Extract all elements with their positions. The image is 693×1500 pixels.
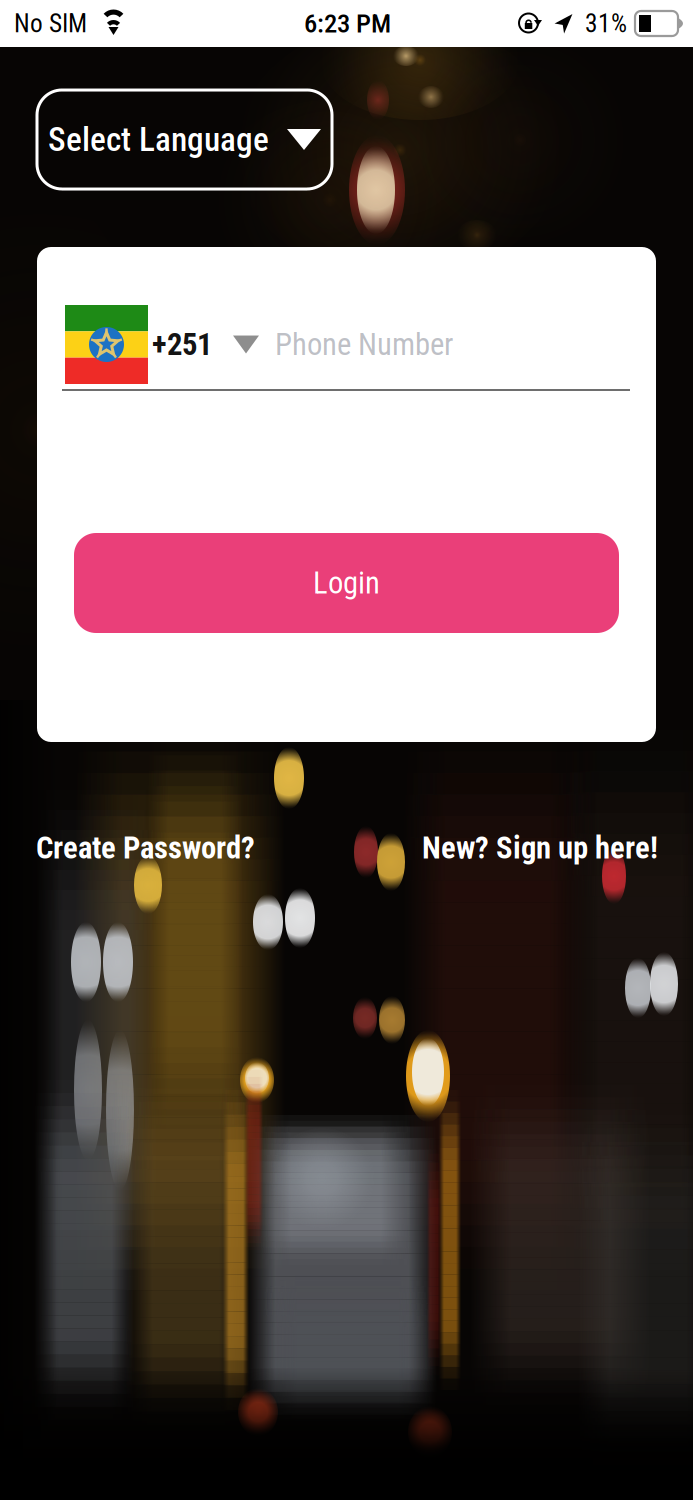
button[interactable]: Create Password?: [36, 830, 255, 866]
staticText: Login: [313, 565, 380, 601]
button[interactable]: Select Language: [37, 90, 332, 189]
staticText: 6:23 PM: [304, 8, 391, 39]
staticText: Phone Number: [275, 326, 453, 362]
button[interactable]: New? Sign up here!: [422, 830, 658, 866]
staticText: Select Language: [48, 120, 269, 159]
staticText: +251: [152, 326, 212, 362]
staticText: New? Sign up here!: [422, 830, 658, 866]
staticText: Create Password?: [36, 830, 255, 866]
staticText: No SIM: [14, 9, 87, 38]
staticText: 31%: [585, 9, 627, 38]
button[interactable]: Login: [74, 533, 619, 633]
